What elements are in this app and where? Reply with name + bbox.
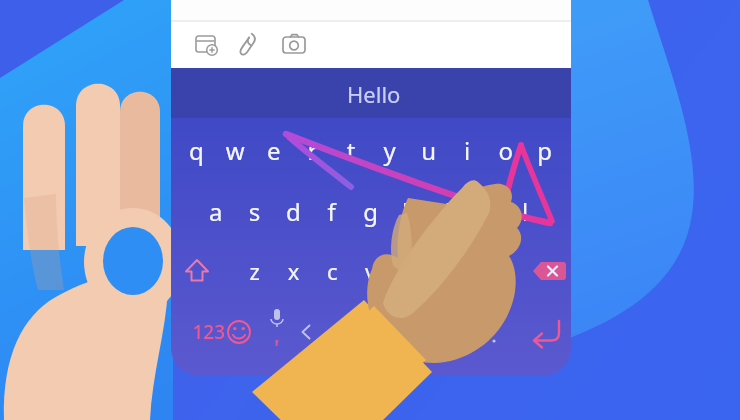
button[interactable]: Swipe keyboard illustration xyxy=(0,0,740,420)
